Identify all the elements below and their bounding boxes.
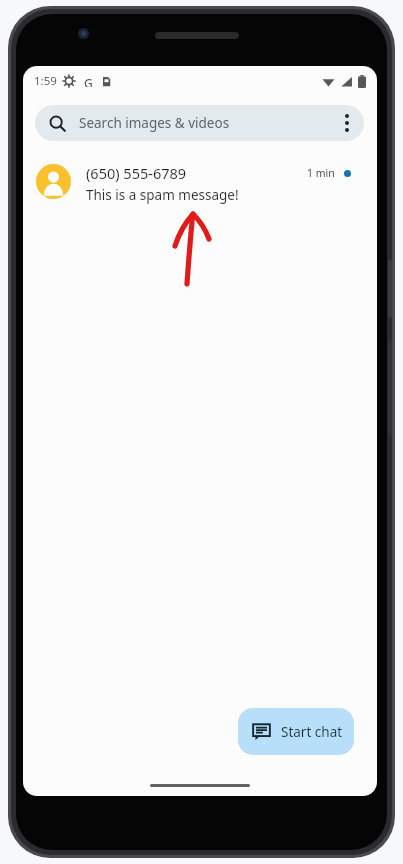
staticText: (650) 555-6789	[86, 163, 187, 183]
staticText: This is a spam message!	[86, 186, 239, 204]
button[interactable]: (650) 555-6789	[23, 156, 377, 210]
button[interactable]: More options	[329, 105, 365, 141]
button[interactable]: Search images & videos	[35, 105, 364, 141]
button[interactable]: Start chat	[238, 708, 354, 755]
staticText: 1:59	[34, 73, 57, 89]
staticText: 1 min	[307, 166, 335, 180]
staticText: G	[84, 75, 93, 87]
staticText: Start chat	[281, 723, 343, 741]
staticText: Search images & videos	[79, 114, 230, 132]
